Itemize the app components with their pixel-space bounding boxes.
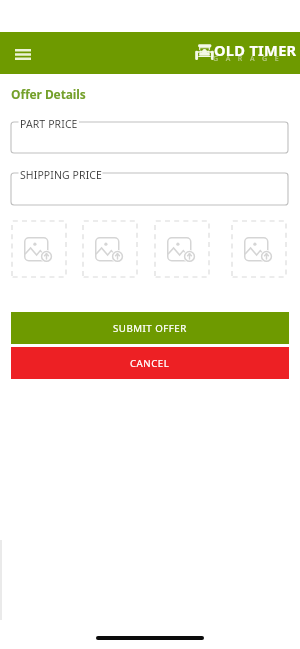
button[interactable]: SHIPPING PRICE (11, 173, 288, 205)
button[interactable]: Upload photo (12, 221, 66, 277)
staticText: SHIPPING PRICE (20, 168, 103, 182)
button[interactable]: CANCEL (11, 347, 289, 379)
staticText: Offer Details (11, 86, 86, 102)
button[interactable]: Upload photo (232, 221, 286, 277)
button[interactable]: SUBMIT OFFER (11, 312, 289, 344)
staticText: PART PRICE (20, 117, 78, 131)
staticText: OLD TIMER (214, 40, 297, 60)
button[interactable]: Menu (8, 38, 38, 68)
button[interactable]: Upload photo (155, 221, 209, 277)
button[interactable]: PART PRICE (11, 122, 288, 153)
staticText: SUBMIT OFFER (113, 322, 187, 335)
staticText: GARAGE (213, 54, 287, 64)
staticText: CANCEL (130, 357, 170, 370)
button[interactable]: Upload photo (83, 221, 137, 277)
